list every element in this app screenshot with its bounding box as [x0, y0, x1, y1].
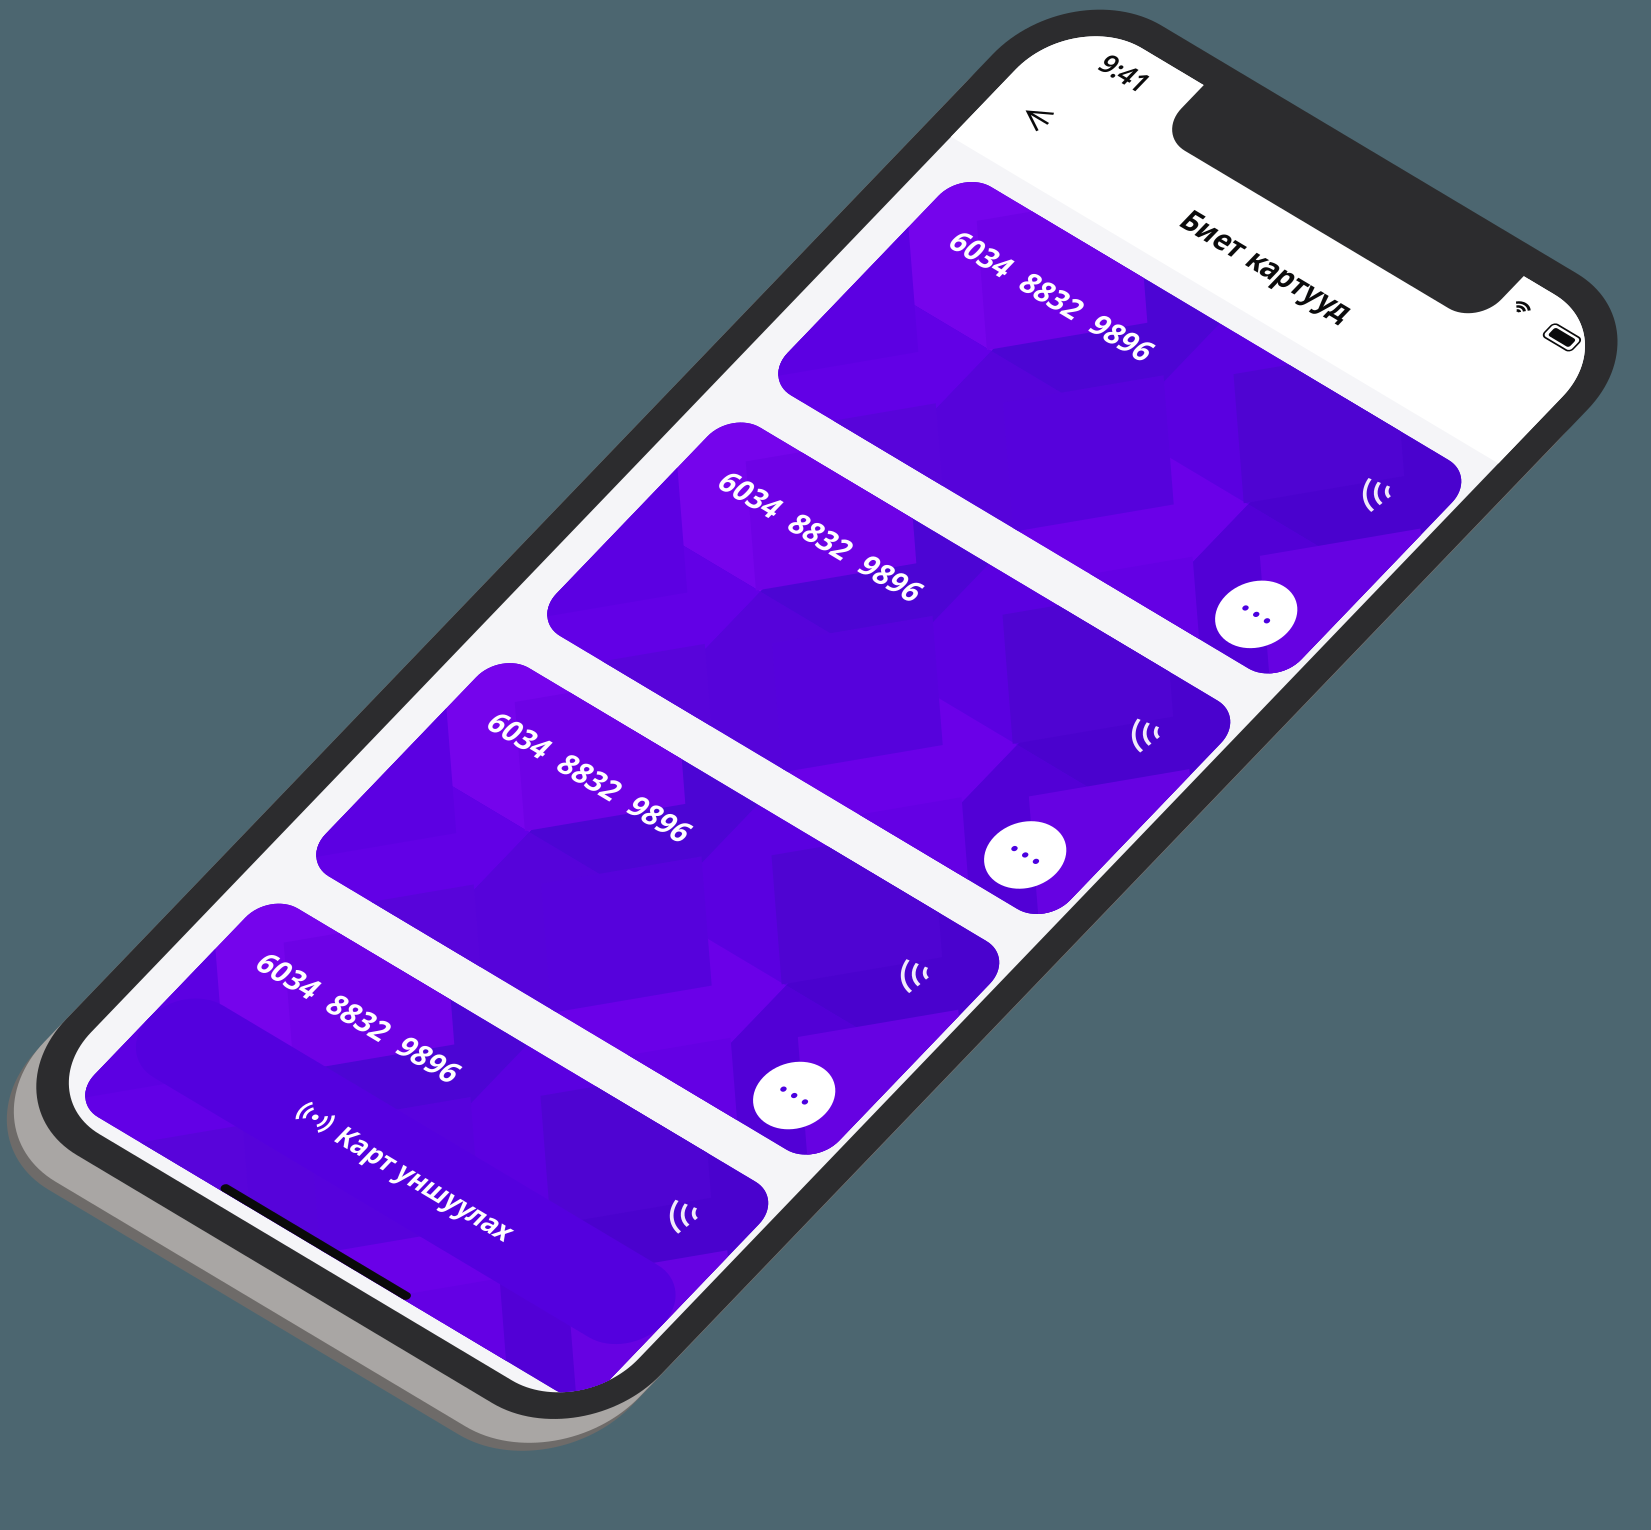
button[interactable]: Карт уншуулах — [20, 744, 386, 800]
